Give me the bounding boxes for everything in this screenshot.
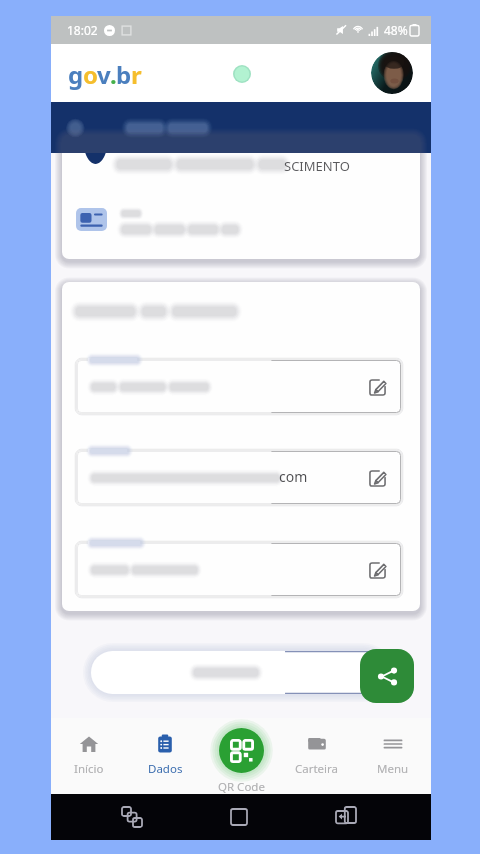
button[interactable]: QR Code <box>219 728 264 773</box>
button[interactable]: Início <box>51 718 127 794</box>
button[interactable] <box>91 651 385 694</box>
staticText: Menu <box>377 761 409 777</box>
staticText: v <box>97 58 110 91</box>
staticText: SCIMENTO <box>284 157 350 175</box>
button[interactable]: Editar <box>365 375 389 399</box>
staticText: b <box>116 58 131 91</box>
staticText: Dados <box>148 761 183 777</box>
button[interactable]: Voltar <box>331 802 361 832</box>
button[interactable]: Dados <box>127 718 203 794</box>
staticText: QR Code <box>218 779 265 795</box>
button[interactable]: Compartilhar <box>360 649 414 703</box>
staticText: g <box>68 58 83 91</box>
button[interactable]: Voltar <box>62 114 90 142</box>
button[interactable]: Menu <box>355 718 431 794</box>
staticText: Carteira <box>295 761 339 777</box>
staticText: . <box>110 58 116 91</box>
button[interactable]: Carteira <box>279 718 355 794</box>
staticText: r <box>131 58 141 91</box>
button[interactable]: Editar <box>365 466 389 490</box>
staticText: o <box>83 58 97 91</box>
button[interactable]: Perfil <box>371 52 413 94</box>
staticText: Início <box>74 761 104 777</box>
button[interactable]: Recentes <box>117 802 147 832</box>
staticText: 48% <box>384 22 408 38</box>
staticText: 18:02 <box>67 22 98 38</box>
button[interactable]: Início <box>224 802 254 832</box>
staticText: com <box>279 467 308 486</box>
button[interactable]: Editar <box>365 558 389 582</box>
